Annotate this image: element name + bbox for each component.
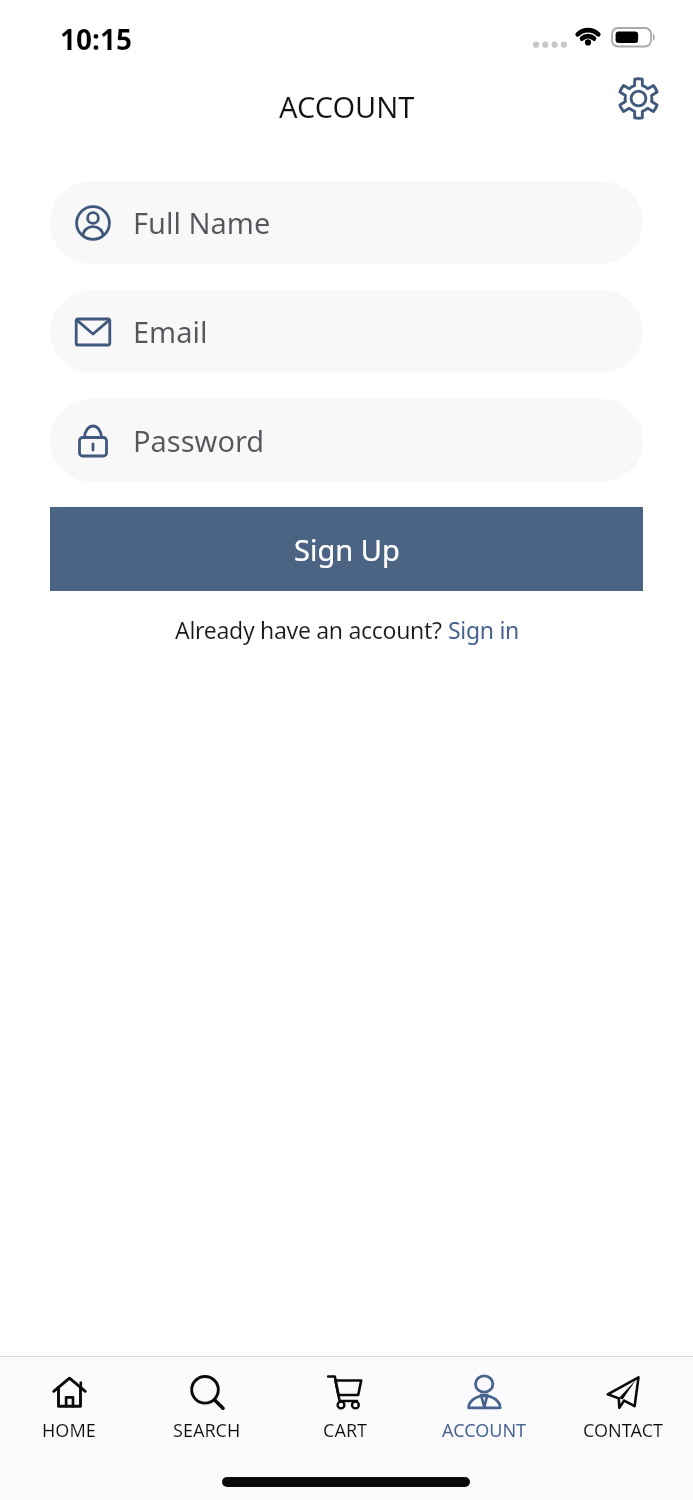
staticText: Email (133, 312, 208, 351)
staticText: Sign Up (294, 530, 400, 569)
staticText: CONTACT (583, 1418, 664, 1443)
button[interactable]: Sign in (448, 614, 519, 645)
button[interactable]: CART (276, 1373, 415, 1443)
button[interactable]: Sign Up (50, 507, 643, 591)
staticText: Sign in (448, 614, 519, 645)
staticText: Already have an account? (175, 614, 448, 645)
staticText: ACCOUNT (442, 1418, 527, 1443)
staticText: HOME (42, 1418, 96, 1443)
staticText: ACCOUNT (279, 87, 415, 126)
button[interactable]: HOME (0, 1373, 138, 1443)
button[interactable] (617, 77, 660, 120)
staticText: SEARCH (173, 1418, 241, 1443)
button[interactable]: ACCOUNT (415, 1373, 554, 1443)
staticText: Password (133, 421, 265, 460)
button[interactable]: CONTACT (554, 1373, 693, 1443)
staticText: CART (323, 1418, 368, 1443)
staticText: 10:15 (60, 20, 132, 54)
button[interactable]: Email (50, 290, 643, 373)
staticText: Full Name (133, 203, 271, 242)
button[interactable]: Full Name (50, 181, 643, 264)
button[interactable]: Password (50, 399, 643, 482)
button[interactable]: SEARCH (138, 1373, 276, 1443)
